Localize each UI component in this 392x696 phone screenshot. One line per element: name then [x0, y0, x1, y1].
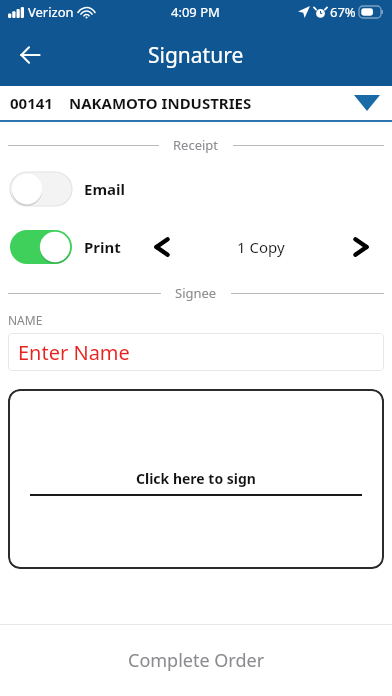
staticText: 67% — [330, 3, 356, 21]
button[interactable]: Back — [8, 33, 52, 77]
staticText: Receipt — [173, 136, 219, 154]
staticText: Print — [84, 237, 121, 257]
staticText: NAKAMOTO INDUSTRIES — [69, 93, 252, 113]
button[interactable]: Enter Name — [8, 333, 384, 371]
button[interactable]: Toggle on — [10, 230, 72, 264]
button[interactable]: Complete Order — [0, 625, 392, 696]
staticText: Email — [84, 179, 125, 199]
button[interactable]: 00141 — [0, 86, 392, 122]
button[interactable]: Decrease copies — [145, 230, 179, 264]
staticText: 1 Copy — [237, 237, 285, 257]
staticText: 00141 — [10, 93, 53, 113]
staticText: Signature — [148, 41, 244, 70]
staticText: Verizon — [28, 3, 74, 21]
button[interactable]: Increase copies — [344, 230, 378, 264]
staticText: Enter Name — [18, 339, 130, 366]
button[interactable]: Click here to sign — [8, 389, 384, 569]
staticText: Complete Order — [128, 648, 265, 673]
staticText: 4:09 PM — [171, 3, 220, 21]
staticText: Signee — [175, 284, 217, 302]
button[interactable]: Toggle off — [10, 172, 72, 206]
staticText: NAME — [8, 312, 43, 328]
staticText: Click here to sign — [136, 469, 256, 488]
